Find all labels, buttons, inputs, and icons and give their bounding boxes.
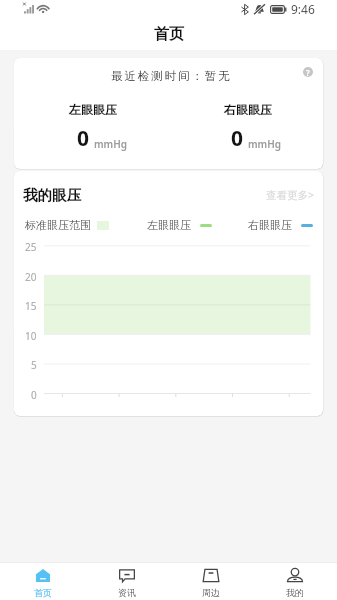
- button[interactable]: 查看更多>: [266, 188, 315, 202]
- staticText: 5: [31, 358, 37, 372]
- staticText: 查看更多>: [266, 188, 315, 202]
- staticText: 首页: [34, 587, 52, 598]
- staticText: mmHg: [94, 137, 128, 151]
- staticText: 右眼眼压: [224, 102, 272, 117]
- staticText: 0: [77, 124, 90, 153]
- staticText: 我的: [286, 587, 304, 598]
- staticText: 0: [231, 124, 244, 153]
- staticText: 9:46: [291, 1, 315, 17]
- staticText: 15: [25, 299, 37, 313]
- staticText: 20: [25, 270, 37, 284]
- button[interactable]: 我的: [253, 567, 337, 600]
- staticText: ?: [306, 67, 310, 77]
- button[interactable]: 资讯: [85, 567, 169, 600]
- button[interactable]: 帮助: [303, 67, 313, 77]
- staticText: 左眼眼压: [69, 102, 117, 117]
- staticText: 左眼眼压: [147, 218, 191, 232]
- staticText: 我的眼压: [23, 186, 81, 204]
- staticText: 右眼眼压: [248, 218, 292, 232]
- button[interactable]: 首页: [0, 567, 85, 600]
- staticText: 首页: [154, 25, 184, 44]
- button[interactable]: 周边: [169, 567, 253, 600]
- staticText: 资讯: [118, 587, 136, 598]
- staticText: 0: [31, 388, 37, 402]
- staticText: 周边: [202, 587, 220, 598]
- staticText: mmHg: [248, 137, 282, 151]
- staticText: 最近检测时间：暂无: [111, 69, 232, 83]
- staticText: 10: [25, 329, 37, 343]
- staticText: 标准眼压范围: [25, 218, 91, 232]
- staticText: 25: [25, 240, 37, 254]
